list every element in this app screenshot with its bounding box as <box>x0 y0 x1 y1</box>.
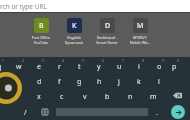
staticText: 5 <box>82 58 85 63</box>
button[interactable]: 4 <box>49 58 69 73</box>
staticText: Smart Home <box>96 40 118 45</box>
button[interactable]: 8 <box>129 58 149 73</box>
button[interactable]: 2 <box>9 58 29 73</box>
button[interactable]: 0 <box>169 58 179 73</box>
staticText: u <box>117 62 122 72</box>
button[interactable]: f <box>49 73 69 88</box>
staticText: g <box>77 77 82 87</box>
staticText: p <box>172 62 177 72</box>
button[interactable]: n <box>119 88 142 103</box>
button[interactable]: / <box>16 103 34 120</box>
staticText: l <box>158 77 160 87</box>
button[interactable]: c <box>50 88 73 103</box>
staticText: i <box>138 62 140 72</box>
staticText: Post Office <box>30 35 52 40</box>
button[interactable]: s <box>9 73 29 88</box>
button[interactable]: K <box>63 18 85 45</box>
staticText: e <box>37 62 41 72</box>
staticText: m <box>150 92 157 102</box>
staticText: . <box>156 108 158 118</box>
button[interactable]: d <box>29 73 49 88</box>
button[interactable]: 3 <box>29 58 49 73</box>
staticText: Keyploit <box>63 35 85 40</box>
staticText: s <box>17 77 21 87</box>
button[interactable]: Change language <box>34 103 56 120</box>
staticText: k <box>137 77 141 87</box>
button[interactable]: g <box>69 73 89 88</box>
staticText: 9 <box>162 58 165 63</box>
staticText: K <box>72 21 77 31</box>
staticText: Dashboard - <box>96 35 118 40</box>
button[interactable]: m <box>142 88 165 103</box>
staticText: M <box>137 21 144 31</box>
staticText: MYSRVC <box>129 35 151 40</box>
staticText: Dynamusic <box>63 40 85 45</box>
button[interactable]: j <box>109 73 129 88</box>
button[interactable]: B <box>30 18 52 45</box>
staticText: w <box>16 62 22 72</box>
staticText: q <box>0 62 2 72</box>
other: Profile badge <box>0 72 22 104</box>
button[interactable]: z <box>6 88 28 103</box>
button[interactable]: 5 <box>69 58 89 73</box>
button[interactable]: 6 <box>89 58 109 73</box>
button[interactable]: . <box>148 103 166 120</box>
button[interactable]: Backspace <box>165 88 190 103</box>
staticText: 6 <box>102 58 105 63</box>
staticText: z <box>15 92 19 102</box>
staticText: 0 <box>177 58 180 63</box>
staticText: d <box>37 77 42 87</box>
staticText: / <box>24 108 27 118</box>
button[interactable]: 1 <box>0 58 9 73</box>
button[interactable]: h <box>89 73 109 88</box>
staticText: y <box>97 62 101 72</box>
staticText: v <box>83 92 87 102</box>
staticText: x <box>37 92 41 102</box>
button[interactable]: k <box>129 73 149 88</box>
staticText: 2 <box>22 58 25 63</box>
button[interactable]: 7 <box>109 58 129 73</box>
staticText: h <box>97 77 102 87</box>
button[interactable]: a <box>0 73 9 88</box>
staticText: 4 <box>62 58 65 63</box>
staticText: 3 <box>42 58 45 63</box>
staticText: f <box>58 77 61 87</box>
button[interactable]: D <box>96 18 118 45</box>
button[interactable]: Enter <box>166 103 190 120</box>
button[interactable]: M <box>129 18 151 45</box>
staticText: 8 <box>142 58 145 63</box>
staticText: a <box>0 77 1 87</box>
button[interactable]: v <box>73 88 96 103</box>
staticText: o <box>157 62 162 72</box>
button[interactable]: rch or type URL <box>0 0 190 12</box>
staticText: Mobile Wo… <box>129 40 151 45</box>
button[interactable]: 9 <box>149 58 169 73</box>
staticText: n <box>128 92 133 102</box>
staticText: YouTube <box>30 40 52 45</box>
staticText: D <box>105 21 111 31</box>
button[interactable]: l <box>149 73 169 88</box>
staticText: j <box>118 77 120 87</box>
staticText: c <box>60 92 64 102</box>
staticText: 7 <box>122 58 125 63</box>
staticText: 1 <box>2 58 5 63</box>
button[interactable]: x <box>28 88 50 103</box>
button[interactable]: b <box>96 88 119 103</box>
staticText: r <box>58 62 61 72</box>
staticText: B <box>39 21 44 31</box>
staticText: rch or type URL <box>0 2 47 11</box>
staticText: t <box>78 62 81 72</box>
staticText: b <box>105 92 110 102</box>
